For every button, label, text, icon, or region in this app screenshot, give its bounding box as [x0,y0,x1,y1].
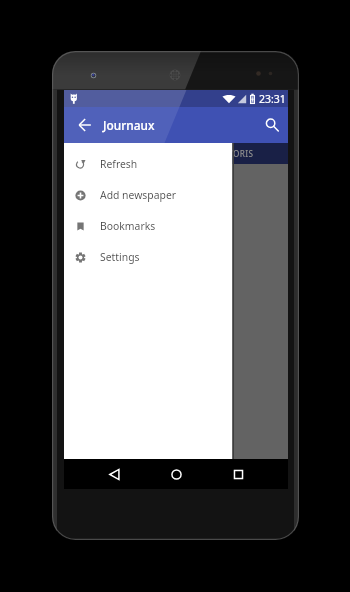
button[interactable]: Navigate up [74,114,96,136]
button[interactable]: Back [96,459,132,489]
other: Front camera [90,72,97,79]
staticText: Add newspaper [100,188,177,202]
staticText: 23:31 [259,92,286,106]
button[interactable]: Recents [220,459,256,489]
staticText: FAVORIS [218,148,254,159]
staticText: Settings [100,250,140,264]
staticText: Journaux [103,117,155,133]
button[interactable]: Home [158,459,194,489]
button[interactable]: Refresh [64,148,234,179]
button[interactable]: Add newspaper [64,179,234,210]
button[interactable]: Bookmarks [64,210,234,241]
staticText: Refresh [100,157,138,171]
button[interactable]: Settings [64,241,234,272]
button[interactable]: Search [261,114,283,136]
staticText: Bookmarks [100,219,156,233]
